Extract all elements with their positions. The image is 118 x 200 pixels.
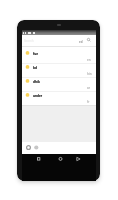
button[interactable]: bd bbox=[22, 63, 96, 77]
button[interactable]: Back bbox=[76, 156, 81, 161]
button[interactable]: Home bbox=[58, 156, 63, 161]
staticText: fue bbox=[33, 52, 39, 56]
button[interactable]: Search bbox=[22, 35, 86, 47]
staticText: bd bbox=[33, 66, 37, 70]
staticText: fr bbox=[87, 100, 90, 104]
staticText: under bbox=[33, 94, 43, 98]
button[interactable]: Recent apps bbox=[36, 156, 41, 161]
staticText: Search bbox=[24, 39, 34, 43]
button[interactable]: under bbox=[22, 91, 96, 105]
button[interactable]: Settings bbox=[26, 145, 31, 150]
staticText: en bbox=[87, 58, 91, 62]
staticText: hin bbox=[87, 72, 92, 76]
button[interactable]: ed bbox=[78, 37, 86, 43]
button[interactable]: Search bbox=[86, 37, 92, 43]
staticText: ed bbox=[79, 40, 83, 44]
button[interactable]: Add bbox=[34, 145, 39, 150]
button[interactable]: dhik bbox=[22, 77, 96, 91]
button[interactable]: fue bbox=[22, 49, 96, 63]
staticText: dhik bbox=[33, 80, 40, 84]
staticText: ar bbox=[87, 86, 91, 90]
